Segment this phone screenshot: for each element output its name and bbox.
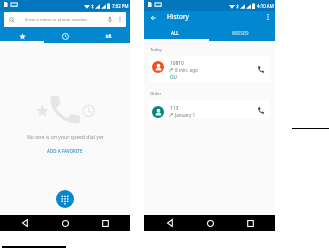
button[interactable]	[87, 27, 130, 43]
staticText: History	[167, 12, 189, 21]
button[interactable]: 10810	[149, 56, 270, 82]
button[interactable]: 113	[149, 100, 270, 119]
button[interactable]: MISSED	[209, 26, 275, 41]
staticText: Today	[150, 46, 162, 52]
staticText: Older	[150, 90, 162, 96]
button[interactable]: Recent apps	[85, 215, 125, 231]
button[interactable]: Navigate up	[147, 11, 160, 24]
staticText: 8 min. ago	[175, 67, 198, 73]
staticText: MISSED	[232, 30, 249, 36]
staticText: 4:10 AM	[257, 3, 274, 9]
button[interactable]	[0, 27, 44, 43]
staticText: 10810	[170, 60, 184, 67]
staticText: 7:02 PM	[112, 3, 129, 9]
button[interactable]: Back	[5, 215, 45, 231]
button[interactable]: Recent apps	[230, 215, 270, 231]
button[interactable]: Enter a name or phone number	[4, 12, 126, 27]
staticText: Enter a name or phone number	[25, 17, 88, 23]
staticText: 113	[170, 105, 179, 112]
staticText: ALL	[171, 30, 179, 36]
button[interactable]: Call back	[254, 104, 266, 116]
button[interactable]: ALL	[144, 26, 209, 41]
button[interactable]: Back	[149, 215, 190, 231]
staticText: No one is on your speed dial yet	[27, 134, 104, 141]
button[interactable]: Home	[45, 215, 85, 231]
staticText: ADD A FAVORITE	[47, 148, 83, 154]
button[interactable]	[44, 27, 87, 43]
button[interactable]: Open dialpad	[56, 190, 74, 208]
button[interactable]: Home	[190, 215, 230, 231]
staticText: OU	[170, 74, 177, 80]
button[interactable]: More options	[262, 11, 274, 23]
button[interactable]: Call back	[254, 63, 266, 75]
button[interactable]: ADD A FAVORITE	[41, 146, 89, 156]
staticText: January 1	[175, 112, 196, 118]
